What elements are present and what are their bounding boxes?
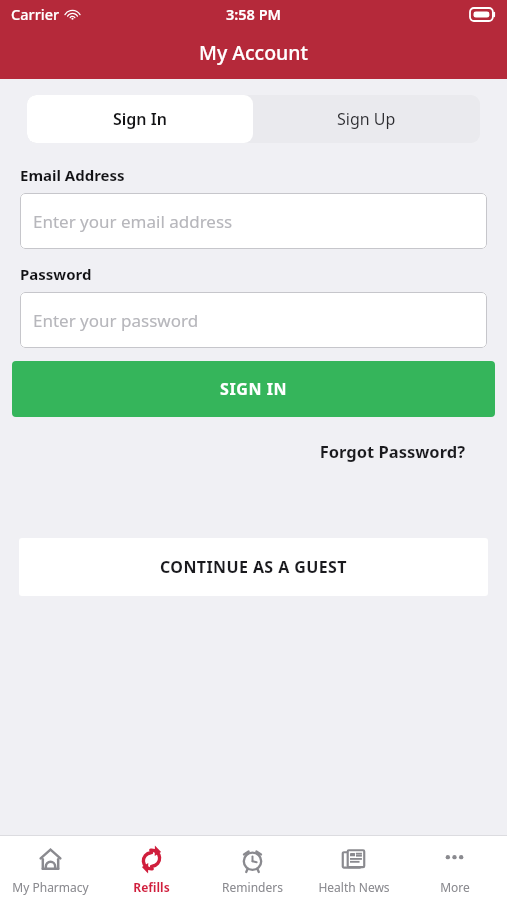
button[interactable]: Refills bbox=[101, 836, 202, 900]
button[interactable]: Sign In bbox=[27, 95, 253, 143]
staticText: Email Address bbox=[20, 165, 125, 185]
button[interactable]: More bbox=[404, 836, 505, 900]
staticText: CONTINUE AS A GUEST bbox=[160, 556, 347, 578]
staticText: My Pharmacy bbox=[12, 879, 89, 895]
button[interactable]: My Pharmacy bbox=[0, 836, 101, 900]
staticText: My Account bbox=[199, 39, 309, 66]
staticText: Password bbox=[20, 264, 92, 284]
staticText: Refills bbox=[133, 879, 170, 895]
button[interactable]: Forgot Password? bbox=[315, 436, 469, 466]
staticText: Carrier bbox=[11, 4, 60, 24]
staticText: Enter your password bbox=[33, 309, 199, 332]
button[interactable]: Enter your email address bbox=[20, 193, 487, 249]
staticText: More bbox=[440, 879, 470, 895]
button[interactable]: Sign Up bbox=[253, 95, 480, 143]
staticText: 3:58 PM bbox=[226, 4, 282, 24]
button[interactable]: CONTINUE AS A GUEST bbox=[19, 538, 488, 596]
staticText: Forgot Password? bbox=[319, 440, 465, 462]
button[interactable]: Reminders bbox=[202, 836, 303, 900]
staticText: SIGN IN bbox=[220, 378, 288, 400]
button[interactable]: SIGN IN bbox=[12, 361, 495, 417]
staticText: Sign Up bbox=[337, 108, 396, 130]
staticText: Enter your email address bbox=[33, 210, 233, 233]
staticText: Sign In bbox=[113, 108, 167, 130]
button[interactable]: Health News bbox=[303, 836, 404, 900]
staticText: Health News bbox=[318, 879, 390, 895]
staticText: Reminders bbox=[222, 879, 283, 895]
button[interactable]: Enter your password bbox=[20, 292, 487, 348]
